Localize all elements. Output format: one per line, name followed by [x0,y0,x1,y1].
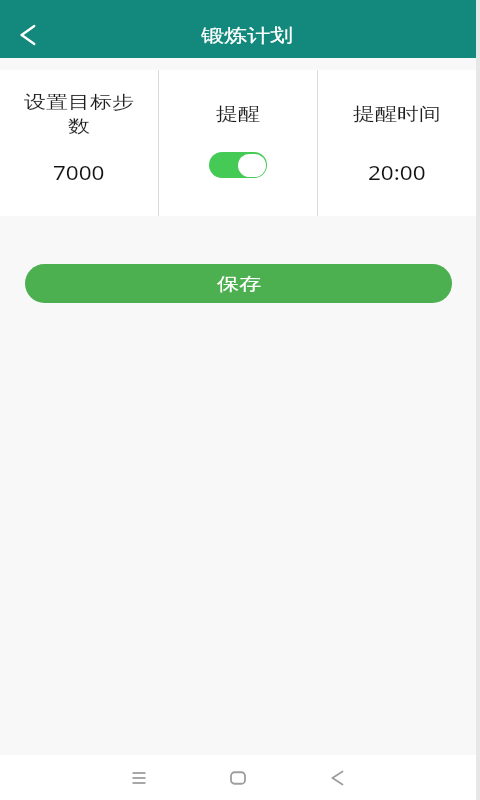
staticText: 提醒 [216,103,260,125]
button[interactable]: Back [8,15,48,55]
staticText: 7000 [53,159,105,186]
staticText: 设置目标步数 [23,91,135,137]
staticText: 20:00 [368,159,426,186]
button[interactable]: 设置目标步数 [0,70,158,216]
button[interactable]: 提醒时间 [318,70,476,216]
staticText: 提醒时间 [327,103,467,125]
button[interactable]: Recent apps [117,756,161,800]
button[interactable]: Reminder switch on [209,152,267,178]
button[interactable]: 保存 [25,264,452,303]
button[interactable]: Home [216,756,260,800]
staticText: 保存 [217,273,261,295]
staticText: 锻炼计划 [201,24,293,47]
button[interactable]: Back [314,756,358,800]
